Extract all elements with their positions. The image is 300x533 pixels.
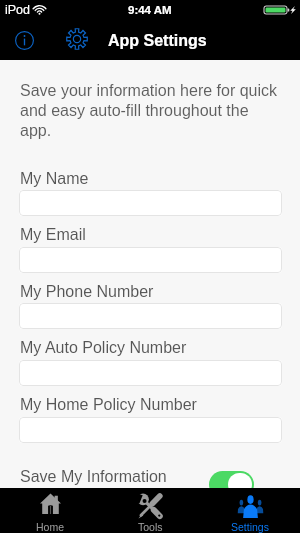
staticText: My Home Policy Number xyxy=(20,396,197,414)
staticText: My Email xyxy=(20,226,86,244)
staticText: App Settings xyxy=(108,32,207,50)
staticText: My Name xyxy=(20,170,89,188)
staticText: iPod xyxy=(5,3,31,17)
button[interactable]: Settings xyxy=(61,23,93,55)
staticText: Save My Information xyxy=(20,468,167,486)
button[interactable] xyxy=(19,247,282,273)
button[interactable]: Save My Information toggle xyxy=(209,471,254,498)
button[interactable]: Info xyxy=(8,24,40,56)
button[interactable] xyxy=(19,190,282,216)
staticText: 9:44 AM xyxy=(128,4,172,17)
button[interactable] xyxy=(19,360,282,386)
staticText: Tools xyxy=(138,521,163,533)
button[interactable]: Home xyxy=(0,488,100,533)
button[interactable] xyxy=(19,303,282,329)
staticText: Home xyxy=(36,521,65,533)
staticText: My Auto Policy Number xyxy=(20,339,187,357)
button[interactable]: Settings xyxy=(200,488,300,533)
staticText: Save your information here for quick and… xyxy=(20,82,282,139)
button[interactable] xyxy=(19,417,282,443)
staticText: Settings xyxy=(231,521,269,533)
staticText: My Phone Number xyxy=(20,283,154,301)
button[interactable]: Tools xyxy=(100,488,200,533)
